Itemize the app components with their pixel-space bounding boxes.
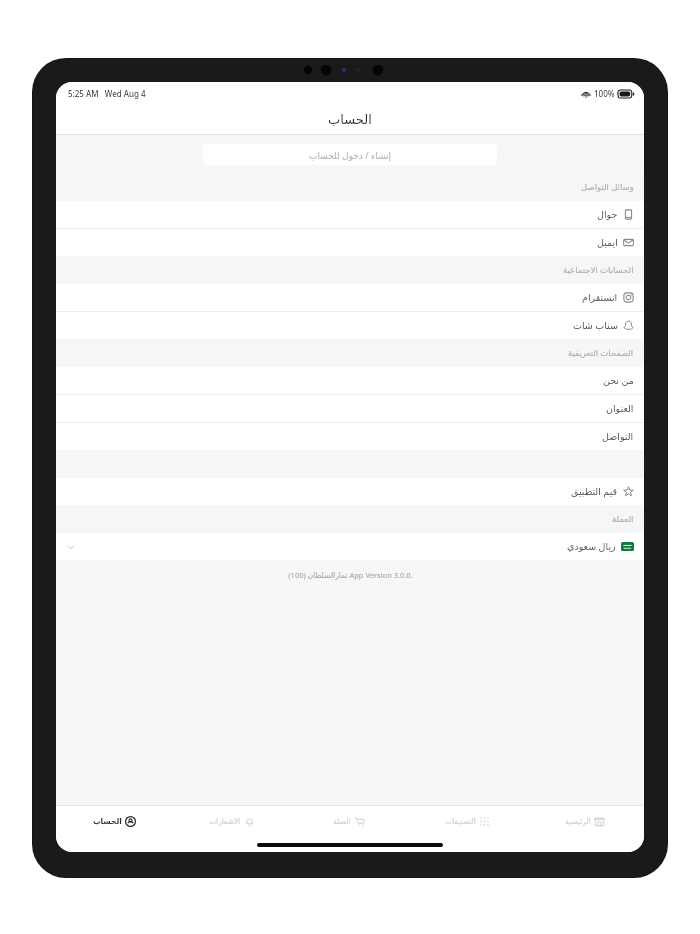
button[interactable]: التواصل [56, 423, 644, 450]
staticText: سناب شات [573, 319, 618, 332]
staticText: وسائل التواصل [581, 181, 634, 193]
staticText: الحساب [328, 112, 372, 127]
staticText: جوال [597, 209, 618, 220]
button[interactable]: التصنيفات [408, 805, 526, 838]
button[interactable]: من نحن [56, 367, 644, 394]
button[interactable]: جوال [56, 201, 644, 228]
staticText: 100% [594, 88, 615, 99]
staticText: من نحن [603, 374, 634, 387]
staticText: الاشعارات [209, 817, 241, 826]
button[interactable]: Expand currency [56, 533, 644, 560]
staticText: العنوان [606, 403, 634, 414]
button[interactable]: ايميل [56, 229, 644, 256]
button[interactable]: العنوان [56, 395, 644, 422]
button[interactable]: قيم التطبيق [56, 478, 644, 505]
button[interactable]: سناب شات [56, 312, 644, 339]
staticText: الحسابات الاجتماعية [563, 264, 634, 276]
staticText: الرئيسية [565, 817, 591, 826]
staticText: ريال سعودي [567, 540, 616, 553]
staticText: العملة [612, 514, 634, 524]
staticText: تمارالسلطان (100) App Version 3.0.0. [288, 570, 413, 580]
other: Expand currency [66, 542, 76, 552]
staticText: السلة [333, 817, 351, 826]
staticText: انستقرام [582, 292, 618, 303]
button[interactable]: إنشاء / دخول للحساب [203, 144, 497, 165]
staticText: الصفحات التعريفية [568, 347, 634, 359]
staticText: قيم التطبيق [571, 485, 618, 498]
staticText: 5:25 AM Wed Aug 4 [68, 88, 146, 99]
staticText: إنشاء / دخول للحساب [309, 149, 391, 161]
button[interactable]: السلة [290, 805, 408, 838]
button[interactable]: الحساب [56, 805, 173, 838]
button[interactable]: انستقرام [56, 284, 644, 311]
staticText: التصنيفات [445, 817, 476, 826]
staticText: التواصل [602, 431, 634, 442]
staticText: الحساب [93, 817, 122, 826]
button[interactable]: الرئيسية [526, 805, 644, 838]
staticText: ايميل [597, 237, 618, 248]
button[interactable]: الاشعارات [173, 805, 290, 838]
